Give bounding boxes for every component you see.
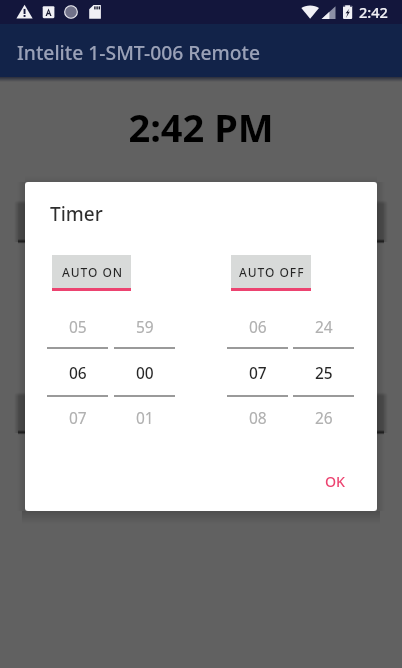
staticText: 07	[69, 407, 87, 428]
button[interactable]: AUTO ON	[52, 255, 131, 291]
staticText: 06	[249, 316, 267, 337]
button[interactable]: AUTO OFF	[231, 255, 311, 291]
button[interactable]: 05	[47, 303, 108, 439]
staticText: Timer	[50, 201, 103, 227]
staticText: 07	[249, 362, 267, 383]
staticText: 05	[69, 316, 87, 337]
staticText: 26	[315, 407, 333, 428]
staticText: AUTO OFF	[239, 264, 305, 280]
staticText: AUTO ON	[62, 264, 124, 280]
staticText: 08	[249, 407, 267, 428]
button[interactable]: 59	[114, 303, 175, 439]
staticText: 25	[315, 362, 333, 383]
staticText: 59	[136, 316, 154, 337]
button[interactable]: OK	[317, 465, 354, 498]
staticText: 00	[136, 362, 154, 383]
button[interactable]: 06	[227, 303, 288, 439]
staticText: Intelite 1-SMT-006 Remote	[17, 39, 261, 65]
staticText: 2:42 PM	[0, 101, 402, 153]
staticText: 2:42	[359, 2, 388, 22]
staticText: 01	[136, 407, 154, 428]
staticText: 24	[315, 316, 333, 337]
button[interactable]: 24	[293, 303, 354, 439]
staticText: OK	[325, 472, 346, 491]
staticText: 06	[69, 362, 87, 383]
